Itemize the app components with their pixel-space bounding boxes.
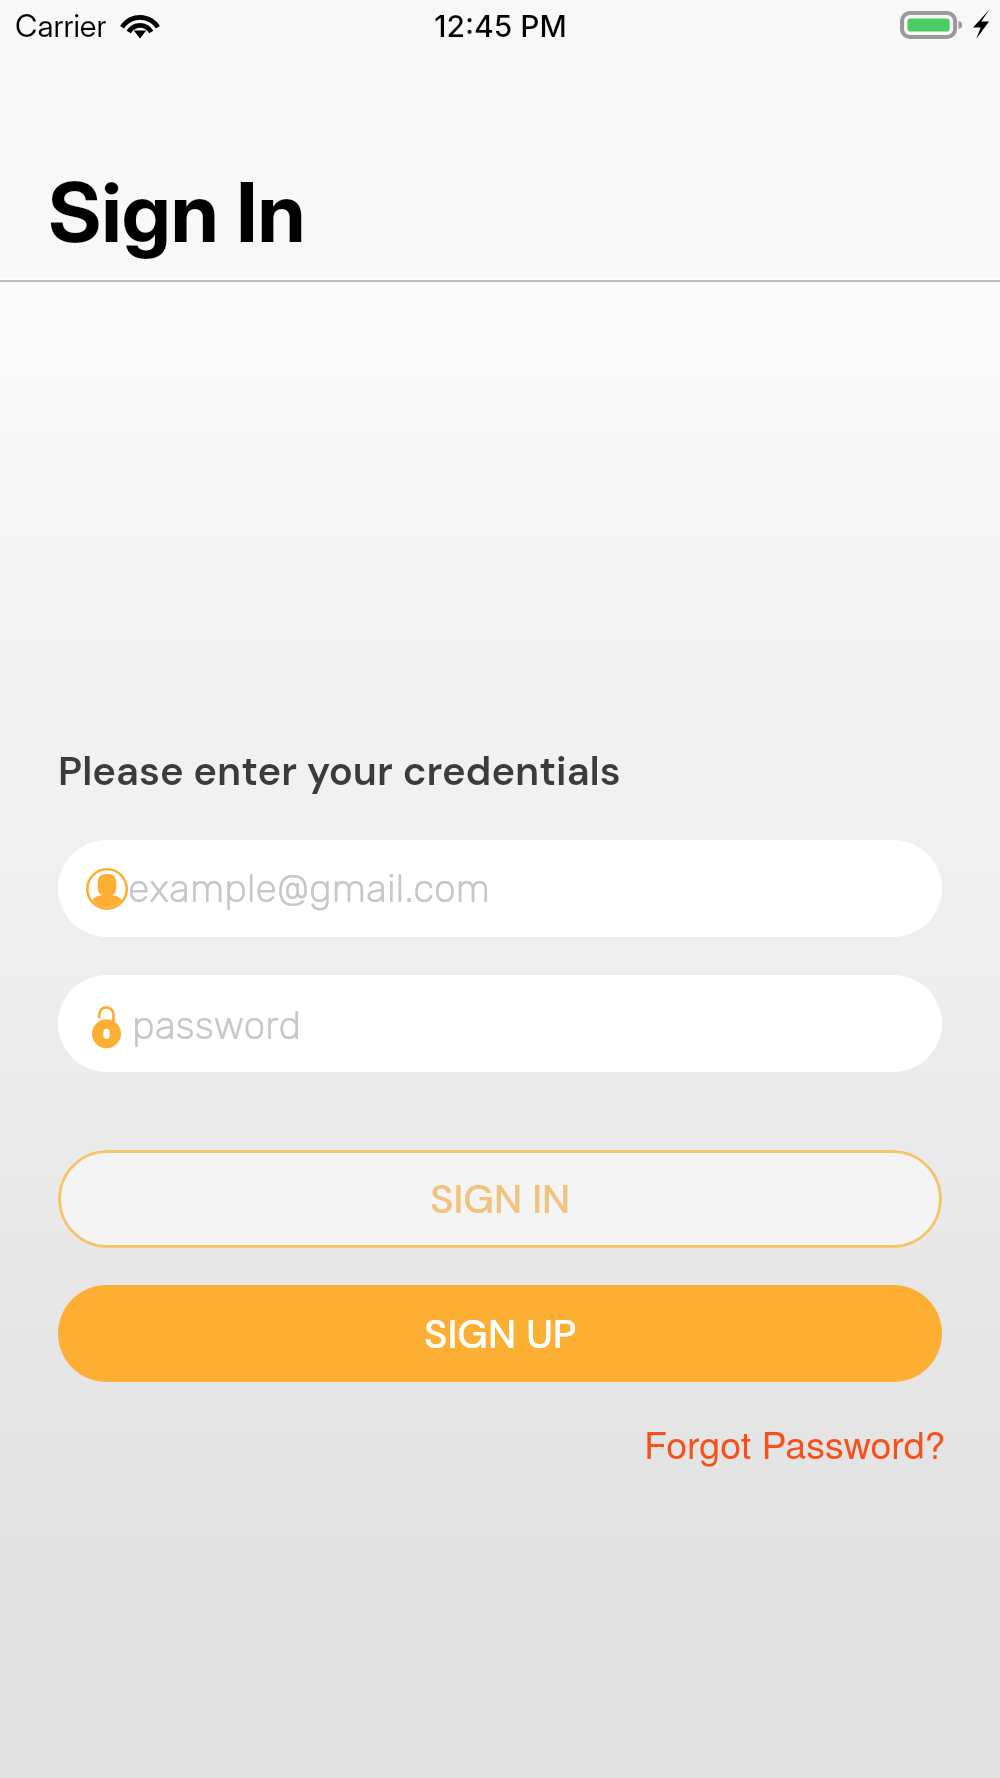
staticText: 12:45 PM bbox=[434, 8, 567, 44]
staticText: password bbox=[132, 1003, 302, 1049]
staticText: Sign In bbox=[48, 163, 306, 262]
button[interactable]: Forgot Password? bbox=[644, 1416, 946, 1470]
staticText: example@gmail.com bbox=[128, 866, 491, 912]
staticText: SIGN UP bbox=[424, 1308, 577, 1360]
staticText: SIGN IN bbox=[430, 1173, 571, 1225]
button[interactable]: password bbox=[58, 975, 942, 1072]
button[interactable]: example@gmail.com bbox=[58, 840, 942, 937]
button[interactable]: SIGN IN bbox=[58, 1150, 942, 1248]
staticText: Please enter your credentials bbox=[58, 745, 621, 797]
staticText: Carrier bbox=[15, 7, 107, 45]
button[interactable]: SIGN UP bbox=[58, 1285, 942, 1382]
